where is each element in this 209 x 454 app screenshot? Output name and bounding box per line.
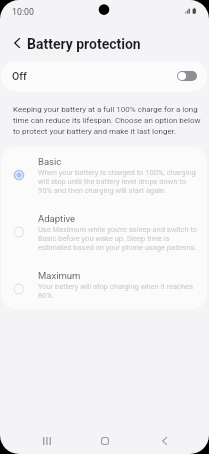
staticText: Maximum [38,270,81,281]
button[interactable]: Adaptive [1,204,207,261]
staticText: Off [12,70,27,82]
button[interactable]: Navigate up [3,29,30,56]
staticText: When your battery is charged to 100%, ch… [38,168,198,195]
staticText: Adaptive [38,213,76,224]
button[interactable]: Back [152,429,176,453]
button[interactable]: Off [1,61,207,92]
button[interactable]: Recent apps [35,429,59,453]
staticText: 10:00 [12,6,34,17]
button[interactable]: Maximum [1,261,207,309]
button[interactable]: Basic [1,147,207,204]
staticText: Your battery will stop charging when it … [38,282,198,300]
staticText: Keeping your battery at a full 100% char… [13,103,203,136]
staticText: Basic [38,156,62,167]
button[interactable]: Home [93,429,117,453]
staticText: Use Maximum while you're asleep and swit… [38,225,198,252]
staticText: Battery protection [27,37,141,52]
